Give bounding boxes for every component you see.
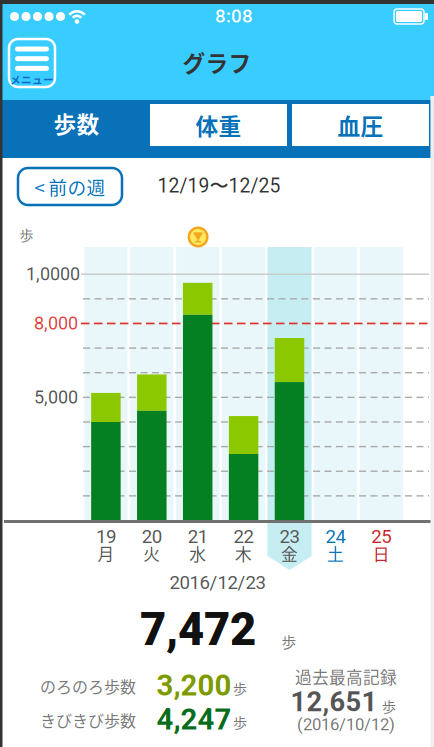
staticText: 21 (188, 526, 208, 547)
staticText: 日 (373, 541, 390, 565)
staticText: 歩 (19, 224, 33, 245)
staticText: 過去最高記録 (295, 664, 397, 688)
staticText: 歩数 (53, 107, 99, 139)
staticText: 歩 (281, 631, 296, 652)
staticText: 月 (97, 541, 114, 565)
staticText: のろのろ歩数 (40, 674, 136, 698)
staticText: 木 (235, 541, 252, 565)
staticText: 12/19〜12/25 (157, 174, 280, 198)
staticText: グラフ (182, 46, 251, 78)
staticText: 23 (279, 526, 299, 547)
staticText: 4,247 (156, 702, 231, 737)
staticText: 土 (327, 541, 344, 565)
staticText: 25 (371, 526, 391, 547)
button[interactable]: 体重 (150, 104, 287, 146)
staticText: 3,200 (156, 668, 231, 703)
button[interactable]: メニュー (8, 38, 56, 88)
staticText: 歩 (233, 678, 247, 698)
staticText: 24 (325, 526, 345, 547)
staticText: 歩 (233, 712, 247, 732)
staticText: 8,000 (34, 313, 78, 334)
staticText: 1,0000 (26, 264, 80, 285)
staticText: きびきび歩数 (40, 708, 136, 732)
button[interactable]: 歩数 (8, 100, 145, 146)
staticText: 2016/12/23 (169, 572, 265, 593)
staticText: 7,472 (140, 603, 256, 656)
staticText: 5,000 (34, 387, 78, 408)
staticText: 血圧 (337, 109, 383, 141)
button[interactable]: < 前の週 (18, 168, 122, 205)
staticText: 金 (281, 541, 298, 565)
staticText: 12,651 (290, 686, 377, 718)
staticText: 火 (143, 541, 160, 565)
staticText: 22 (234, 526, 254, 547)
staticText: 歩 (382, 696, 396, 716)
staticText: 水 (189, 541, 206, 565)
staticText: 8:08 (215, 5, 253, 27)
staticText: 20 (142, 526, 162, 547)
staticText: (2016/10/12) (297, 715, 395, 734)
staticText: 19 (96, 526, 116, 547)
staticText: 体重 (195, 109, 241, 141)
staticText: < 前の週 (34, 173, 105, 200)
button[interactable]: 血圧 (292, 104, 429, 146)
staticText: メニュー (10, 71, 54, 87)
